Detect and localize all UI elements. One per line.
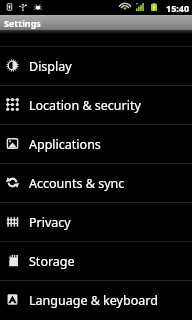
button[interactable]: Language & keyboard xyxy=(0,281,192,319)
staticText: Applications xyxy=(29,136,101,153)
staticText: Storage xyxy=(29,253,75,270)
button[interactable]: Storage xyxy=(0,242,192,280)
staticText: Accounts & sync xyxy=(29,175,125,192)
staticText: 15:40 xyxy=(166,2,190,14)
button[interactable]: Applications xyxy=(0,125,192,163)
button[interactable]: Display xyxy=(0,47,192,85)
staticText: Language & keyboard xyxy=(29,292,158,309)
staticText: Location & security xyxy=(29,97,141,114)
staticText: Settings xyxy=(4,17,41,29)
staticText: Privacy xyxy=(29,214,71,231)
button[interactable]: Accounts & sync xyxy=(0,164,192,202)
button[interactable]: Location & security xyxy=(0,86,192,124)
staticText: Display xyxy=(29,58,72,75)
button[interactable]: Privacy xyxy=(0,203,192,241)
